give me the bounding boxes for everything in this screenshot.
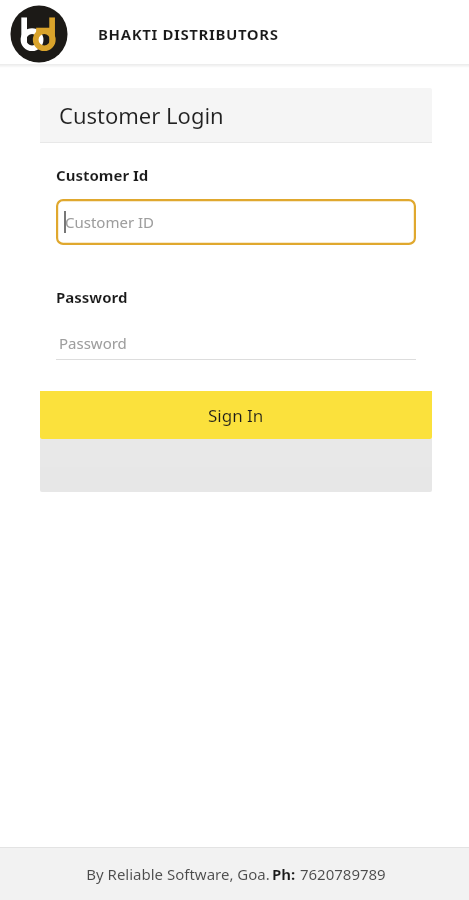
staticText: 7620789789 xyxy=(296,864,386,884)
staticText: Customer Id xyxy=(56,165,149,185)
staticText: BHAKTI DISTRIBUTORS xyxy=(98,24,279,44)
button[interactable]: Customer ID xyxy=(56,199,416,245)
staticText: Password xyxy=(59,333,127,353)
staticText: Customer Login xyxy=(59,100,224,130)
staticText: Sign In xyxy=(208,404,264,427)
button[interactable]: Sign In xyxy=(40,391,432,439)
staticText: Password xyxy=(56,287,128,307)
button[interactable]: Password xyxy=(56,327,416,360)
other: Bhakti Distributors logo xyxy=(8,3,70,65)
staticText: Customer ID xyxy=(65,212,155,232)
staticText: Ph: xyxy=(272,864,296,884)
staticText: By Reliable Software, Goa. xyxy=(84,864,272,884)
